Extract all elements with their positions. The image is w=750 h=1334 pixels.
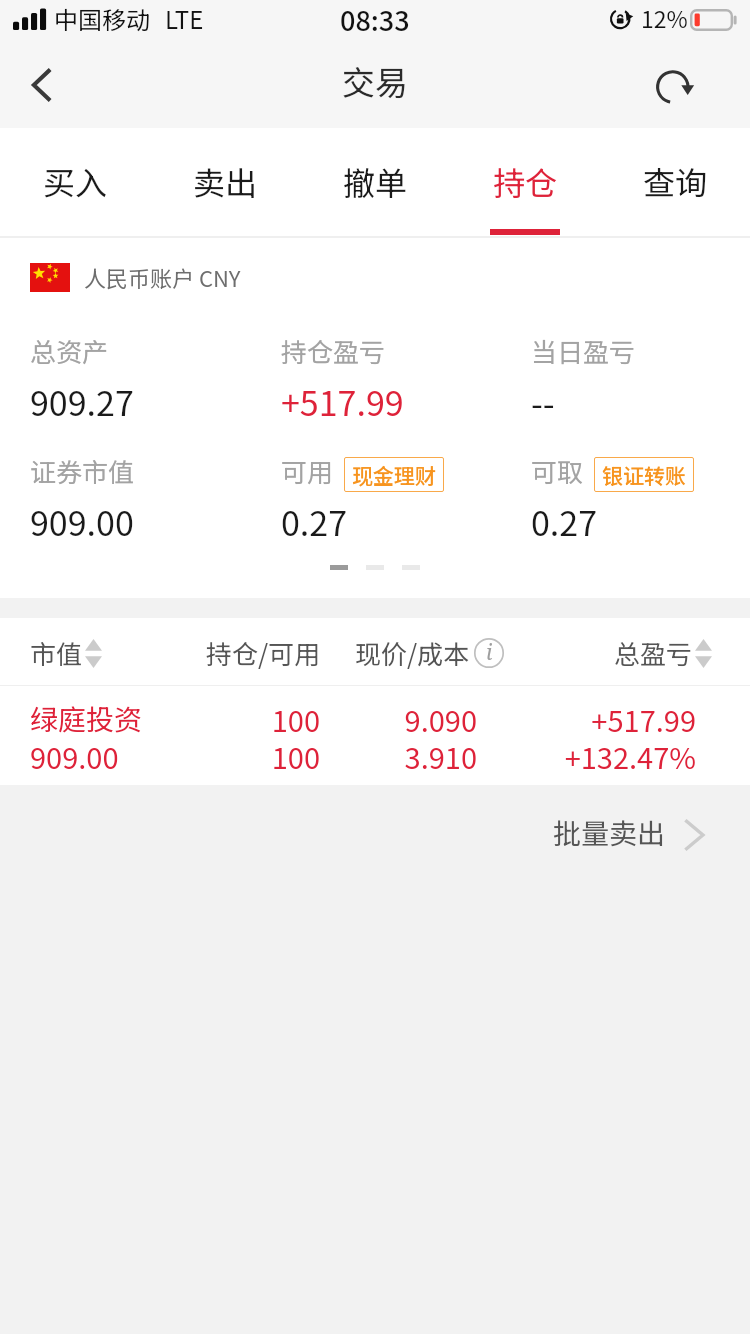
staticText: 总资产 [30,332,109,370]
button[interactable]: 查询 [600,128,750,238]
staticText: LTE [165,1,204,36]
staticText: 3.910 [0,735,477,777]
staticText: +132.47% [0,735,696,777]
button[interactable]: 批量卖出 [531,794,728,871]
staticText: 可取 [531,452,584,490]
staticText: 909.00 [30,497,134,546]
staticText: 08:33 [340,0,410,39]
button[interactable]: Info [473,637,505,669]
staticText: 909.27 [30,377,134,426]
staticText: 持仓 [493,158,558,204]
button[interactable]: 持仓 [450,128,600,238]
staticText: 12% [641,1,688,34]
staticText: 0.27 [531,497,598,546]
staticText: 银证转账 [602,460,686,490]
staticText: 撤单 [343,158,408,204]
staticText: 总盈亏 [614,634,693,672]
staticText: 卖出 [193,158,258,204]
button[interactable]: Refresh [630,50,750,128]
staticText: 证券市值 [30,452,135,490]
staticText: 现金理财 [352,460,436,490]
staticText: +517.99 [281,377,404,426]
staticText: 现价/成本 [355,634,470,672]
staticText: 100 [0,698,320,740]
button[interactable]: 绿庭投资 [0,686,750,785]
staticText: 909.00 [30,735,119,777]
staticText: +517.99 [0,698,696,740]
button[interactable]: Back [0,50,80,128]
staticText: 交易 [342,57,408,105]
staticText: 持仓盈亏 [281,332,386,370]
button[interactable]: 卖出 [150,128,300,238]
staticText: -- [531,377,555,426]
staticText: 批量卖出 [553,812,666,853]
staticText: 100 [0,735,320,777]
staticText: 买入 [43,158,108,204]
staticText: 持仓/可用 [206,634,321,672]
staticText: 9.090 [0,698,477,740]
staticText: 绿庭投资 [30,698,143,739]
button[interactable]: 买入 [0,128,150,238]
button[interactable]: 银证转账 [594,457,694,492]
staticText: 人民币账户 CNY [84,261,241,293]
staticText: 当日盈亏 [531,332,636,370]
staticText: 0.27 [281,497,348,546]
staticText: 市值 [30,634,83,672]
staticText: i [486,638,493,667]
staticText: 查询 [643,158,708,204]
button[interactable]: 撤单 [300,128,450,238]
staticText: 中国移动 [54,1,150,36]
button[interactable]: 现金理财 [344,457,444,492]
staticText: 可用 [281,452,334,490]
